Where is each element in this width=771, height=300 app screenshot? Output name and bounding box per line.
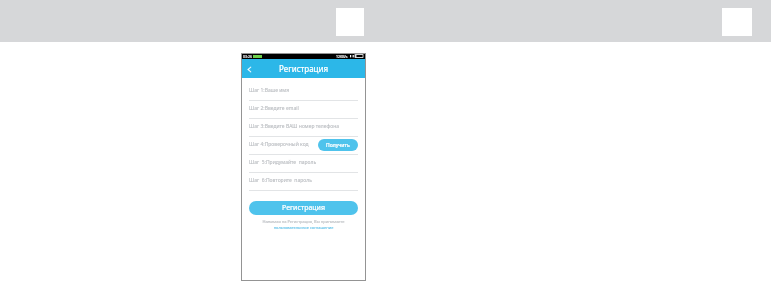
staticText: 12KB/s xyxy=(336,54,348,59)
staticText: Шаг 5:Придумайте пароль xyxy=(249,159,317,166)
staticText: Шаг 1:Ваше имя xyxy=(249,87,290,94)
button[interactable]: Back xyxy=(241,61,257,77)
button[interactable]: Шаг 1:Ваше имя xyxy=(249,83,358,101)
button[interactable]: Шаг 4:Проверочный код xyxy=(249,137,358,155)
staticText: Регистрация xyxy=(282,203,325,213)
staticText: Шаг 2:Введите email xyxy=(249,105,299,112)
staticText: Шаг 3:Введите ВАШ номер телефона xyxy=(249,123,340,130)
button[interactable]: Получить xyxy=(318,139,358,151)
button[interactable]: Шаг 3:Введите ВАШ номер телефона xyxy=(249,119,358,137)
staticText: Нажимая на Регистрация, Вы принимаете xyxy=(249,219,358,224)
button[interactable]: Регистрация xyxy=(249,201,358,215)
staticText: Получить xyxy=(326,142,350,149)
staticText: Шаг 6:Повторите пароль xyxy=(249,177,312,184)
staticText: Регистрация xyxy=(279,63,329,74)
button[interactable]: Шаг 5:Придумайте пароль xyxy=(249,155,358,173)
staticText: Шаг 4:Проверочный код xyxy=(249,141,309,148)
staticText: 03:26 xyxy=(243,54,252,59)
button[interactable]: Шаг 2:Введите email xyxy=(249,101,358,119)
button[interactable]: пользовательское соглашение xyxy=(249,225,358,230)
button[interactable]: Шаг 6:Повторите пароль xyxy=(249,173,358,191)
